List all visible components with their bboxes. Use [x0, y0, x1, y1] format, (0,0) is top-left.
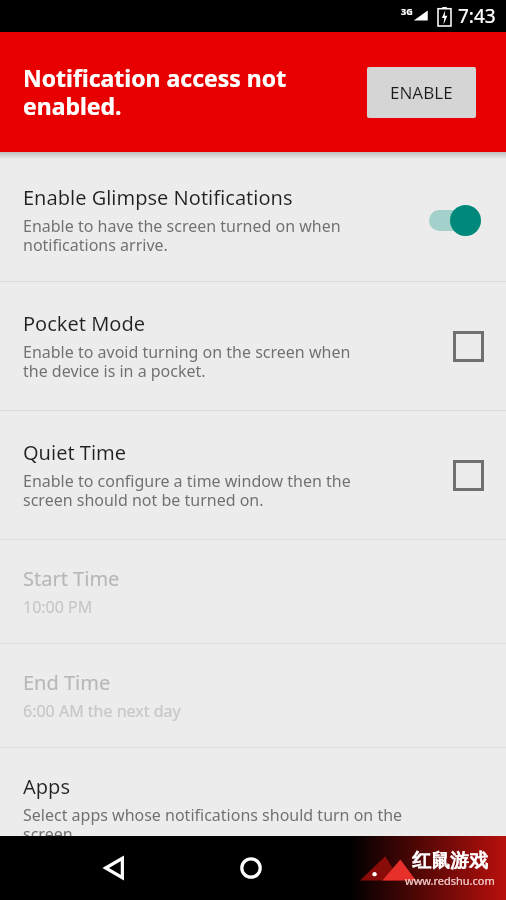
staticText: Notification access not enabled.: [23, 62, 287, 122]
button[interactable]: ENABLE: [367, 67, 476, 118]
staticText: End Time: [23, 669, 111, 696]
button[interactable]: Enable Glimpse Notifications: [0, 159, 506, 281]
staticText: 红鼠游戏: [412, 849, 488, 873]
staticText: Apps: [23, 773, 70, 800]
button[interactable]: Quiet Time: [0, 411, 506, 539]
staticText: Select apps whose notifications should t…: [23, 804, 403, 845]
staticText: Pocket Mode: [23, 310, 145, 337]
staticText: Start Time: [23, 565, 120, 592]
button[interactable]: Apps: [0, 748, 506, 845]
staticText: Enable to configure a time window then t…: [23, 470, 351, 511]
staticText: www.redshu.com: [405, 873, 495, 888]
staticText: 6:00 AM the next day: [23, 700, 181, 722]
staticText: Enable to avoid turning on the screen wh…: [23, 341, 351, 382]
staticText: 3G: [401, 5, 413, 17]
button[interactable]: Start Time: [0, 540, 506, 643]
button[interactable]: Home: [225, 842, 277, 894]
staticText: 10:00 PM: [23, 596, 93, 618]
button[interactable]: Back: [88, 842, 140, 894]
staticText: Quiet Time: [23, 439, 127, 466]
staticText: ENABLE: [390, 81, 453, 104]
button[interactable]: Pocket Mode: [0, 282, 506, 410]
staticText: Enable Glimpse Notifications: [23, 184, 293, 211]
staticText: Enable to have the screen turned on when…: [23, 215, 341, 256]
staticText: 7:43: [458, 3, 496, 29]
button[interactable]: End Time: [0, 644, 506, 747]
